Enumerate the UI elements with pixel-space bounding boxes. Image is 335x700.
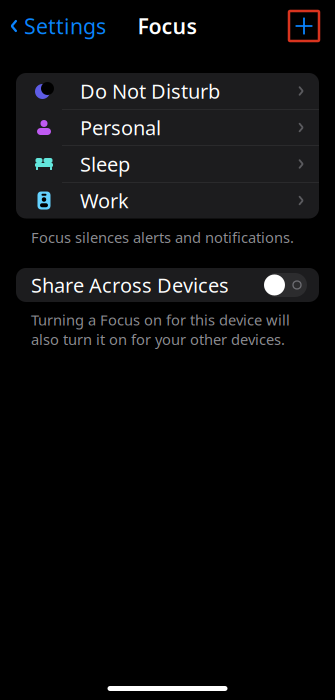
- button[interactable]: Personal: [16, 109, 319, 146]
- staticText: Focus silences alerts and notifications.: [31, 227, 294, 247]
- button[interactable]: Settings: [0, 6, 106, 46]
- staticText: Personal: [80, 114, 161, 141]
- staticText: Settings: [24, 12, 106, 40]
- staticText: Focus: [137, 12, 197, 40]
- staticText: Work: [80, 187, 129, 214]
- staticText: Sleep: [80, 151, 130, 177]
- button[interactable]: Work: [16, 182, 319, 218]
- button[interactable]: Do Not Disturb: [16, 73, 319, 109]
- staticText: Share Across Devices: [31, 272, 229, 298]
- button[interactable]: Sleep: [16, 146, 319, 182]
- staticText: Do Not Disturb: [80, 78, 220, 104]
- staticText: Turning a Focus on for this device will …: [31, 310, 290, 349]
- button[interactable]: Add Focus: [289, 11, 319, 41]
- button[interactable]: Share Across Devices: [264, 273, 307, 297]
